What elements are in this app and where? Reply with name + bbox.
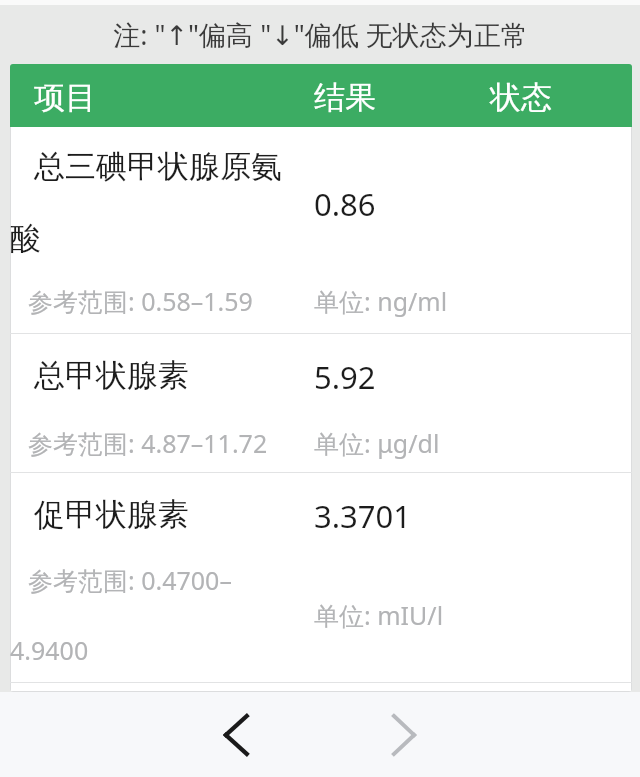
staticText: 总三碘甲状腺原氨	[34, 147, 282, 186]
staticText: 注: "↑"偏高 "↓"偏低 无状态为正常	[113, 16, 528, 53]
staticText: 3.3701	[314, 495, 411, 537]
staticText: 酸	[10, 219, 41, 258]
staticText: 5.92	[314, 356, 376, 398]
staticText: 促甲状腺素	[34, 495, 189, 534]
button[interactable]: 总三碘甲状腺原氨	[10, 127, 632, 333]
staticText: 状态	[490, 78, 552, 117]
button[interactable]: Previous page	[206, 705, 266, 765]
staticText: 项目	[34, 78, 96, 117]
staticText: 参考范围: 0.4700–	[28, 563, 232, 597]
staticText: 总甲状腺素	[34, 356, 189, 395]
staticText: 单位: ng/ml	[314, 284, 448, 318]
staticText: 结果	[314, 78, 376, 117]
staticText: 单位: μg/dl	[314, 426, 440, 460]
staticText: 单位: mIU/l	[314, 598, 444, 632]
button[interactable]: Next page	[374, 705, 434, 765]
staticText: 参考范围: 0.58–1.59	[28, 284, 253, 318]
staticText: 0.86	[314, 183, 376, 225]
staticText: 参考范围: 4.87–11.72	[28, 426, 268, 460]
staticText: 4.9400	[10, 633, 89, 667]
button[interactable]: 促甲状腺素	[10, 473, 632, 682]
button[interactable]: 总甲状腺素	[10, 334, 632, 472]
